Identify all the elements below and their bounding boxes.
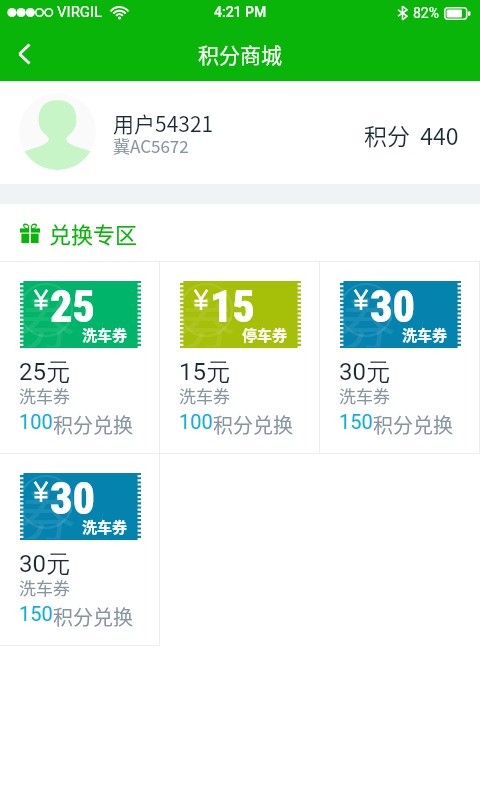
button[interactable]: 用户54321	[0, 81, 480, 184]
staticText: 积分兑换	[53, 410, 133, 439]
staticText: 洗车券	[402, 324, 448, 346]
button[interactable]: 券	[0, 262, 160, 454]
staticText: 兑换专区	[49, 217, 138, 249]
staticText: 100	[19, 410, 53, 433]
staticText: 停车券	[242, 324, 288, 346]
staticText: 洗车券	[179, 383, 230, 408]
staticText: 30元	[339, 357, 390, 387]
staticText: 冀AC5672	[113, 133, 189, 158]
button[interactable]: Back	[0, 26, 48, 81]
staticText: 洗车券	[82, 516, 128, 538]
staticText: 积分兑换	[213, 410, 293, 439]
staticText: 洗车券	[19, 383, 70, 408]
button[interactable]: 券	[320, 262, 480, 454]
staticText: 积分兑换	[53, 602, 133, 631]
staticText: 券	[180, 281, 235, 347]
staticText: 15元	[179, 357, 230, 387]
staticText: 30	[370, 281, 415, 333]
staticText: 15	[210, 281, 255, 333]
staticText: 82%	[413, 5, 439, 21]
button[interactable]: 券	[160, 262, 320, 454]
staticText: 150	[339, 410, 373, 433]
staticText: 洗车券	[82, 324, 128, 346]
staticText: 25元	[19, 357, 70, 387]
staticText: 券	[20, 473, 75, 539]
staticText: 30	[50, 473, 95, 525]
staticText: 150	[19, 602, 53, 625]
staticText: 4:21 PM	[214, 4, 267, 20]
staticText: 积分商城	[198, 39, 282, 69]
button[interactable]: 券	[0, 454, 160, 646]
staticText: 用户54321	[113, 108, 214, 138]
button[interactable]: 兑换专区	[0, 204, 480, 261]
staticText: 积分 440	[364, 118, 459, 151]
staticText: 洗车券	[339, 383, 390, 408]
staticText: 25	[50, 281, 95, 333]
staticText: 积分兑换	[373, 410, 453, 439]
staticText: 券	[340, 281, 395, 347]
staticText: VIRGIL	[57, 3, 103, 21]
staticText: 100	[179, 410, 213, 433]
staticText: 30元	[19, 549, 70, 579]
staticText: 券	[20, 281, 75, 347]
staticText: 洗车券	[19, 575, 70, 600]
